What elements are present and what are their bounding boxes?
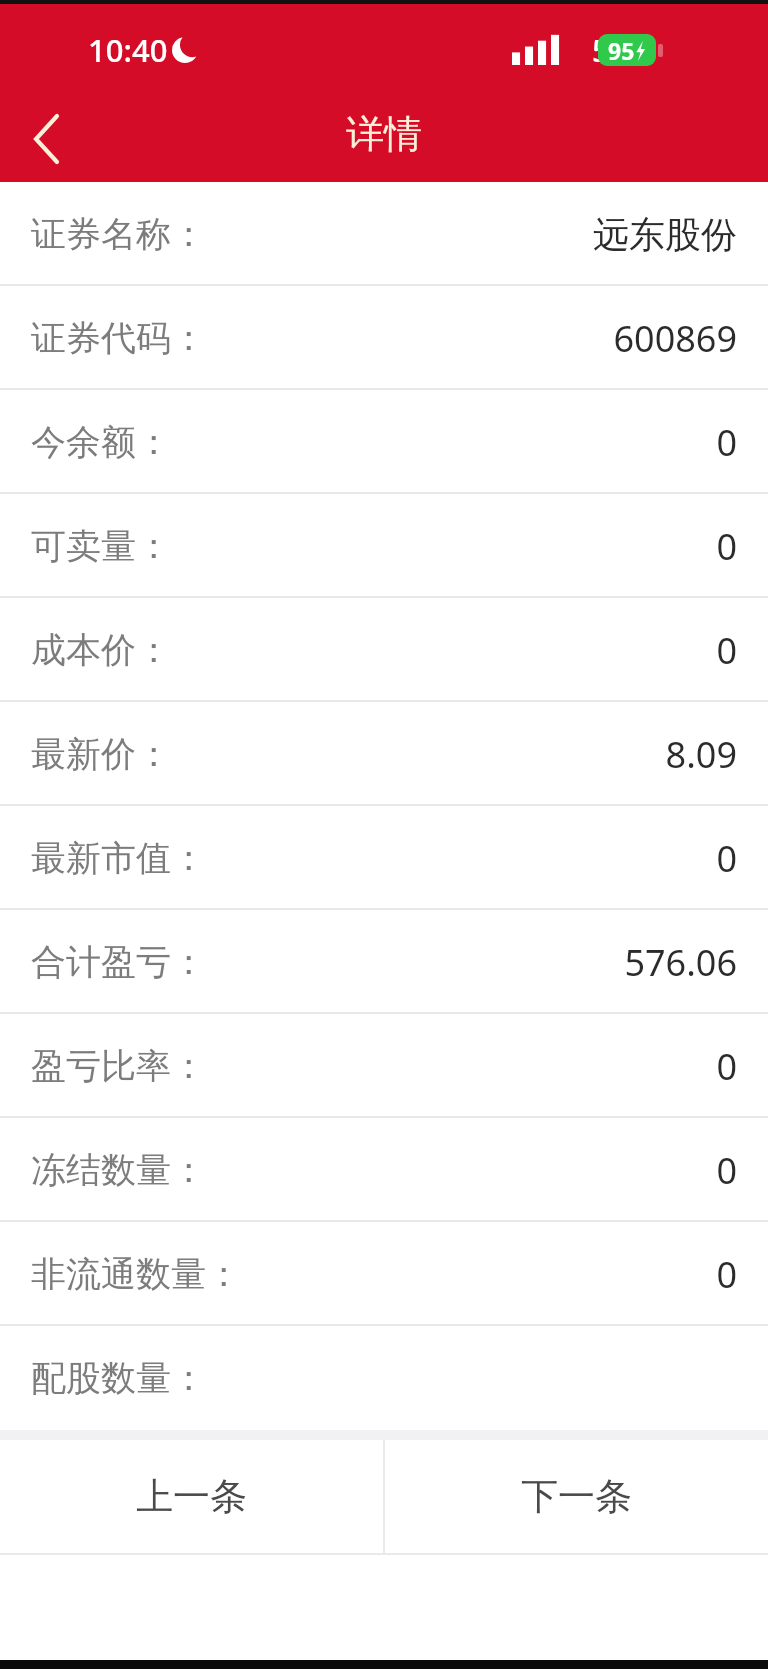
staticText: 可卖量：: [31, 524, 171, 568]
staticText: 0: [716, 834, 737, 883]
staticText: 今余额：: [31, 420, 171, 464]
button[interactable]: 返回: [0, 96, 96, 182]
staticText: 盈亏比率：: [31, 1044, 206, 1088]
staticText: 600869: [613, 314, 737, 363]
button[interactable]: 合计盈亏：: [0, 910, 768, 1014]
staticText: 0: [716, 1250, 737, 1299]
button[interactable]: 下一条: [385, 1440, 768, 1553]
staticText: 非流通数量：: [31, 1252, 241, 1296]
staticText: 合计盈亏：: [31, 940, 206, 984]
staticText: 8.09: [665, 730, 737, 779]
staticText: 详情: [346, 110, 422, 158]
staticText: 95: [608, 35, 635, 66]
button[interactable]: 今余额：: [0, 390, 768, 494]
button[interactable]: 证券名称：: [0, 182, 768, 286]
staticText: 5G: [592, 30, 631, 71]
staticText: 10:40: [88, 29, 168, 71]
staticText: 上一条: [136, 1473, 247, 1520]
button[interactable]: 配股数量：: [0, 1326, 768, 1430]
staticText: 576.06: [624, 938, 737, 987]
staticText: 冻结数量：: [31, 1148, 206, 1192]
button[interactable]: 成本价：: [0, 598, 768, 702]
button[interactable]: 盈亏比率：: [0, 1014, 768, 1118]
staticText: 证券名称：: [31, 212, 206, 256]
staticText: 成本价：: [31, 628, 171, 672]
button[interactable]: 冻结数量：: [0, 1118, 768, 1222]
staticText: 远东股份: [593, 212, 737, 257]
staticText: 0: [716, 1146, 737, 1195]
button[interactable]: 非流通数量：: [0, 1222, 768, 1326]
staticText: 0: [716, 626, 737, 675]
staticText: 证券代码：: [31, 316, 206, 360]
button[interactable]: 可卖量：: [0, 494, 768, 598]
staticText: 0: [716, 522, 737, 571]
staticText: 0: [716, 418, 737, 467]
staticText: 配股数量：: [31, 1356, 206, 1400]
button[interactable]: 最新价：: [0, 702, 768, 806]
staticText: 最新市值：: [31, 836, 206, 880]
staticText: 0: [716, 1042, 737, 1091]
staticText: 最新价：: [31, 732, 171, 776]
staticText: 下一条: [521, 1473, 632, 1520]
button[interactable]: 最新市值：: [0, 806, 768, 910]
button[interactable]: 上一条: [0, 1440, 383, 1553]
button[interactable]: 证券代码：: [0, 286, 768, 390]
